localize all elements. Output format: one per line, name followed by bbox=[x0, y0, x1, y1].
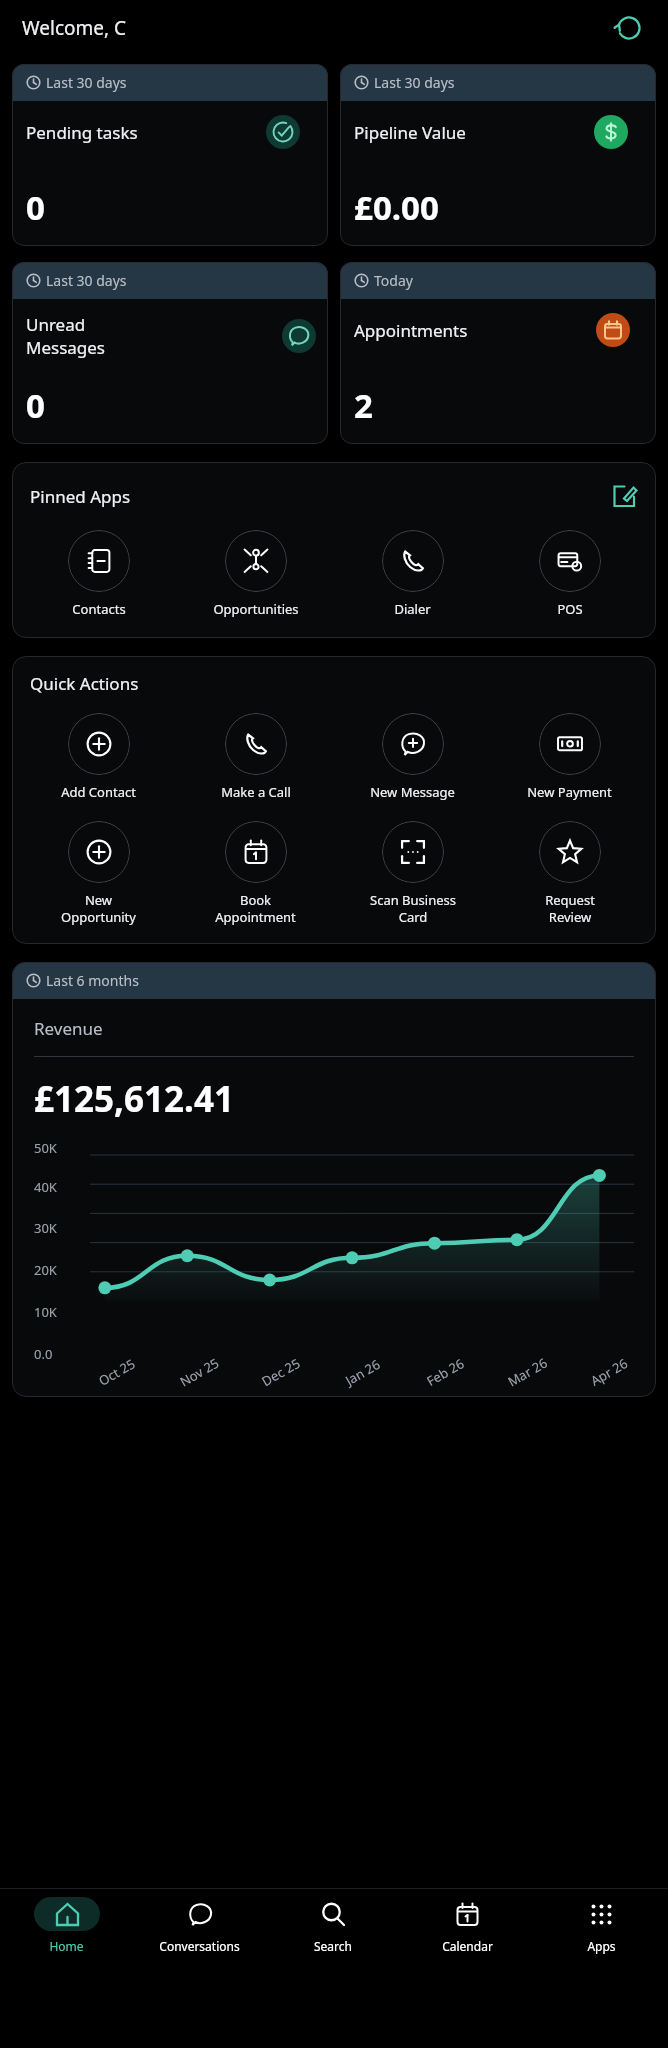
staticText: Calendar bbox=[442, 1938, 493, 1954]
button[interactable]: New Message bbox=[334, 709, 491, 805]
button[interactable]: Make a Call bbox=[177, 709, 334, 805]
button[interactable]: Contacts bbox=[20, 526, 177, 622]
staticText: Apps bbox=[587, 1938, 616, 1954]
staticText: Pending tasks bbox=[26, 121, 138, 144]
button[interactable]: Apps bbox=[534, 1889, 668, 1993]
button[interactable]: Last 30 days bbox=[12, 64, 328, 246]
staticText: New Message bbox=[370, 783, 455, 801]
button[interactable]: Dialer bbox=[334, 526, 491, 622]
staticText: Feb 26 bbox=[423, 1354, 468, 1390]
staticText: Apr 26 bbox=[587, 1354, 631, 1390]
staticText: Nov 25 bbox=[176, 1353, 223, 1391]
staticText: 40K bbox=[34, 1178, 57, 1196]
staticText: Oct 25 bbox=[95, 1354, 139, 1390]
button[interactable]: Edit pinned apps bbox=[606, 478, 642, 514]
staticText: 0 bbox=[26, 383, 45, 428]
staticText: £125,612.41 bbox=[34, 1075, 234, 1123]
button[interactable]: Scan Business Card bbox=[334, 817, 491, 930]
staticText: 20K bbox=[34, 1261, 57, 1279]
staticText: Opportunities bbox=[213, 600, 299, 618]
staticText: Revenue bbox=[34, 1017, 103, 1040]
button[interactable]: Calendar bbox=[400, 1889, 534, 1993]
button[interactable]: Book Appointment bbox=[177, 817, 334, 930]
staticText: Last 30 days bbox=[46, 271, 127, 290]
button[interactable]: New Opportunity bbox=[20, 817, 177, 930]
button[interactable]: Add Contact bbox=[20, 709, 177, 805]
staticText: Add Contact bbox=[61, 783, 136, 801]
button[interactable]: New Payment bbox=[491, 709, 648, 805]
staticText: 30K bbox=[34, 1219, 57, 1237]
staticText: New Opportunity bbox=[61, 891, 136, 926]
staticText: Jan 26 bbox=[342, 1355, 384, 1389]
button[interactable]: Last 30 days bbox=[340, 64, 656, 246]
staticText: Mar 26 bbox=[504, 1353, 551, 1391]
staticText: Quick Actions bbox=[30, 672, 139, 695]
staticText: Book Appointment bbox=[215, 891, 296, 926]
button[interactable]: Request Review bbox=[491, 817, 648, 930]
button[interactable]: Refresh bbox=[612, 11, 646, 45]
staticText: 10K bbox=[34, 1303, 57, 1321]
staticText: Appointments bbox=[354, 319, 468, 342]
staticText: 0.0 bbox=[34, 1345, 53, 1363]
staticText: Today bbox=[374, 271, 413, 290]
staticText: Dialer bbox=[394, 600, 431, 618]
staticText: £0.00 bbox=[354, 185, 439, 230]
staticText: 0 bbox=[26, 185, 45, 230]
staticText: Last 6 months bbox=[46, 971, 139, 990]
button[interactable]: Search bbox=[266, 1889, 400, 1993]
staticText: POS bbox=[557, 600, 583, 618]
button[interactable]: Conversations bbox=[133, 1889, 266, 1993]
button[interactable]: Last 6 months bbox=[12, 962, 656, 1397]
staticText: 2 bbox=[354, 383, 373, 428]
staticText: Dec 25 bbox=[258, 1354, 304, 1390]
button[interactable]: POS bbox=[491, 526, 648, 622]
button[interactable]: Home bbox=[0, 1889, 133, 1993]
staticText: 50K bbox=[34, 1139, 57, 1157]
button[interactable]: Opportunities bbox=[177, 526, 334, 622]
button[interactable]: Today bbox=[340, 262, 656, 444]
staticText: Welcome, C bbox=[22, 15, 127, 41]
staticText: New Payment bbox=[527, 783, 612, 801]
staticText: Search bbox=[314, 1938, 352, 1954]
button[interactable]: Last 30 days bbox=[12, 262, 328, 444]
staticText: Pinned Apps bbox=[30, 485, 131, 508]
staticText: Pipeline Value bbox=[354, 121, 466, 144]
staticText: Home bbox=[49, 1938, 84, 1954]
staticText: Scan Business Card bbox=[370, 891, 456, 926]
staticText: Conversations bbox=[159, 1938, 240, 1954]
staticText: Request Review bbox=[545, 891, 595, 926]
staticText: Last 30 days bbox=[46, 73, 127, 92]
staticText: Last 30 days bbox=[374, 73, 455, 92]
staticText: Unread Messages bbox=[26, 313, 154, 359]
staticText: Contacts bbox=[72, 600, 126, 618]
staticText: Make a Call bbox=[221, 783, 291, 801]
